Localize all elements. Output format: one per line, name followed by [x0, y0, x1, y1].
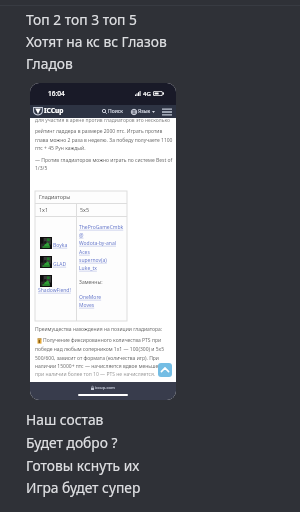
- staticText: 1x1: [39, 206, 49, 213]
- staticText: 5x5: [80, 206, 90, 213]
- staticText: Boyka: [53, 242, 68, 249]
- staticText: Aces: [79, 249, 90, 256]
- staticText: 4G: [143, 90, 151, 98]
- staticText: supernov(a): [79, 257, 107, 264]
- button[interactable]: Наш состав: [26, 410, 104, 429]
- staticText: при наличии более топ 10 — PTS не начисл…: [35, 371, 156, 378]
- staticText: iccup.com: [95, 385, 115, 391]
- staticText: рейтинг ладдера в размере 2000 птс. Игра…: [35, 128, 163, 135]
- staticText: Wodota-by-anal: [79, 240, 117, 247]
- staticText: TheProGameCmbk: [79, 224, 124, 231]
- button[interactable]: Хотят на кс вс Глазов: [26, 32, 167, 51]
- staticText: победе над любым соперником 1x1 — 100(30…: [35, 346, 165, 353]
- button[interactable]: Топ 2 топ 3 топ 5: [26, 10, 137, 29]
- staticText: @: [79, 232, 84, 239]
- staticText: Получение фиксированного количества PTS …: [43, 337, 162, 344]
- button[interactable]: Menu: [162, 108, 172, 116]
- button[interactable]: GLAD: [40, 256, 52, 268]
- button[interactable]: Будет добро ?: [26, 433, 118, 452]
- button[interactable]: Language: [131, 108, 155, 115]
- staticText: Язык: [138, 108, 151, 115]
- staticText: Поиск: [108, 108, 123, 115]
- staticText: — Против гладиаторов можно играть по сис…: [35, 157, 173, 164]
- staticText: Заменны:: [79, 279, 103, 286]
- button[interactable]: Игра будет супер: [26, 478, 141, 497]
- staticText: глава можно 2 раза в неделю. За победу п…: [35, 137, 173, 144]
- staticText: птс + 45 Рун каждый.: [35, 145, 86, 152]
- staticText: для участия в арене против гладиаторов э…: [35, 118, 170, 124]
- button[interactable]: Screenshot: [30, 83, 176, 400]
- staticText: Гладиаторы: [39, 193, 71, 200]
- button[interactable]: Search: [102, 108, 123, 115]
- staticText: Luke_tx: [79, 265, 97, 272]
- button[interactable]: Готовы кснуть их: [26, 456, 140, 475]
- staticText: GLAD: [53, 261, 67, 268]
- staticText: 16:04: [48, 89, 65, 98]
- button[interactable]: ShadowFiend: [40, 275, 52, 287]
- button[interactable]: Гладов: [26, 54, 73, 73]
- staticText: ICCup: [44, 106, 64, 115]
- staticText: ShadowFiend!: [38, 287, 71, 294]
- staticText: 1/3/5: [35, 165, 48, 172]
- staticText: Преимущества нахождения на позиции глади…: [35, 326, 163, 333]
- staticText: Moves: [79, 302, 95, 309]
- button[interactable]: Scroll to top: [158, 363, 172, 377]
- staticText: OneMore: [79, 294, 102, 301]
- staticText: наличии 15000+ птс — начисляется вдвое м…: [35, 363, 169, 370]
- staticText: 500/600, зависит от формата (количества …: [35, 355, 159, 362]
- button[interactable]: Boyka: [40, 237, 52, 249]
